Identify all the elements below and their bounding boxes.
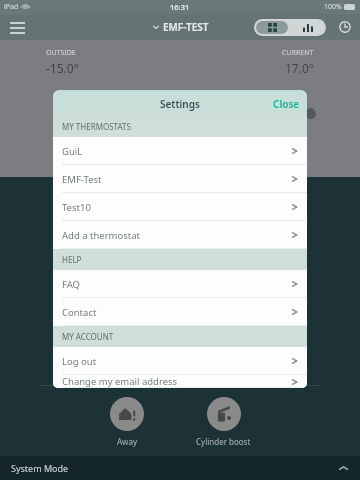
- staticText: OUTSIDE: [46, 48, 76, 58]
- staticText: Settings: [160, 97, 200, 111]
- button[interactable]: Chart view: [290, 19, 326, 36]
- button[interactable]: Test10: [53, 193, 307, 221]
- staticText: 17.0°: [285, 60, 314, 76]
- staticText: EMF-Test: [62, 173, 102, 186]
- staticText: HELP: [62, 254, 82, 265]
- staticText: Close: [273, 97, 300, 111]
- staticText: Test10: [62, 201, 91, 214]
- staticText: Change my email address: [62, 375, 178, 388]
- staticText: 100%: [324, 2, 342, 12]
- staticText: System Mode: [11, 462, 69, 474]
- button[interactable]: Schedule: [330, 14, 360, 40]
- staticText: GuiL: [62, 145, 83, 158]
- staticText: iPad: [4, 2, 19, 12]
- staticText: 16:31: [170, 2, 190, 12]
- staticText: Cylinder boost: [196, 436, 251, 447]
- button[interactable]: EMF-TEST: [152, 20, 209, 34]
- staticText: Log out: [62, 355, 97, 368]
- staticText: MY ACCOUNT: [62, 331, 114, 342]
- button[interactable]: Contact: [53, 298, 307, 326]
- staticText: EMF-TEST: [163, 20, 209, 34]
- button[interactable]: GuiL: [53, 137, 307, 165]
- staticText: -15.0°: [46, 60, 79, 76]
- staticText: Away: [117, 436, 137, 447]
- button[interactable]: EMF-Test: [53, 165, 307, 193]
- button[interactable]: System Mode: [0, 456, 360, 480]
- button[interactable]: Close: [273, 97, 300, 111]
- button[interactable]: Log out: [53, 347, 307, 375]
- staticText: FAQ: [62, 278, 81, 291]
- button[interactable]: Grid view: [256, 21, 288, 34]
- staticText: Contact: [62, 306, 97, 319]
- staticText: CURRENT: [282, 48, 314, 58]
- staticText: MY THERMOSTATS: [62, 121, 131, 132]
- button[interactable]: Change my email address: [53, 375, 307, 388]
- button[interactable]: Cylinder boost: [190, 397, 257, 447]
- staticText: Add a thermostat: [62, 229, 140, 242]
- button[interactable]: Menu: [0, 14, 34, 40]
- button[interactable]: Away: [104, 397, 150, 447]
- button[interactable]: Add a thermostat: [53, 221, 307, 249]
- button[interactable]: FAQ: [53, 270, 307, 298]
